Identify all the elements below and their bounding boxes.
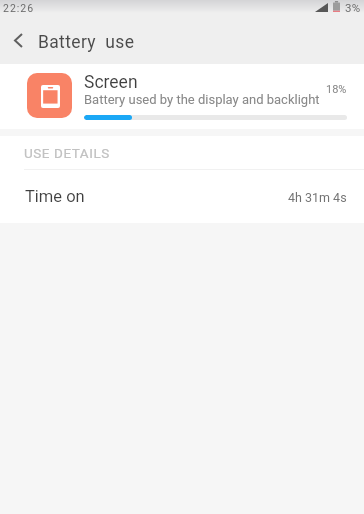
staticText: Screen (84, 72, 138, 93)
staticText: USE DETAILS (24, 145, 110, 161)
button[interactable] (0, 64, 364, 129)
button[interactable]: Back (2, 24, 34, 57)
staticText: Time on (25, 187, 85, 206)
button[interactable]: Time on (0, 170, 364, 223)
staticText: 4h 31m 4s (288, 190, 347, 205)
staticText: 22:26 (3, 2, 35, 14)
staticText: Battery used by the display and backligh… (84, 92, 320, 107)
staticText: Battery use (38, 32, 135, 53)
staticText: 3% (345, 1, 361, 14)
staticText: 18% (326, 83, 347, 96)
